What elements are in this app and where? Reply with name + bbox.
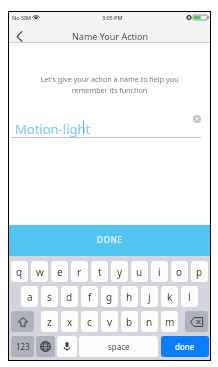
- button[interactable]: 123: [11, 336, 34, 357]
- button[interactable]: g: [101, 286, 118, 307]
- button[interactable]: Dictation: [57, 336, 77, 357]
- staticText: y: [117, 265, 123, 279]
- staticText: q: [16, 265, 23, 279]
- staticText: j: [148, 290, 151, 304]
- button[interactable]: p: [191, 261, 208, 282]
- staticText: Let's give your action a name to help yo…: [27, 74, 192, 95]
- staticText: Name Your Action: [72, 30, 149, 42]
- button[interactable]: y: [111, 261, 128, 282]
- staticText: k: [167, 290, 173, 304]
- staticText: g: [106, 290, 113, 304]
- staticText: x: [67, 315, 73, 329]
- staticText: b: [126, 315, 133, 329]
- button[interactable]: Next keyboard: [36, 336, 55, 357]
- staticText: e: [57, 265, 63, 279]
- button[interactable]: DONE: [9, 225, 210, 256]
- staticText: n: [146, 315, 153, 329]
- staticText: t: [98, 265, 102, 279]
- button[interactable]: h: [121, 286, 138, 307]
- other: Backspace: [185, 311, 208, 332]
- button[interactable]: o: [171, 261, 188, 282]
- staticText: p: [196, 265, 203, 279]
- button[interactable]: k: [161, 286, 178, 307]
- button[interactable]: d: [61, 286, 78, 307]
- staticText: h: [126, 290, 133, 304]
- staticText: i: [158, 265, 161, 279]
- other: Next keyboard: [36, 336, 55, 357]
- button[interactable]: v: [101, 311, 118, 332]
- button[interactable]: c: [81, 311, 98, 332]
- other: Shift: [11, 311, 34, 332]
- staticText: o: [176, 265, 183, 279]
- button[interactable]: q: [11, 261, 28, 282]
- staticText: d: [66, 290, 73, 304]
- staticText: 123: [16, 341, 30, 352]
- staticText: w: [36, 265, 44, 279]
- staticText: m: [165, 315, 175, 329]
- staticText: space: [108, 341, 130, 352]
- button[interactable]: e: [51, 261, 68, 282]
- staticText: l: [188, 290, 191, 304]
- button[interactable]: Clear text: [193, 115, 201, 123]
- staticText: done: [175, 341, 195, 352]
- staticText: v: [107, 315, 113, 329]
- button[interactable]: i: [151, 261, 168, 282]
- staticText: z: [47, 315, 52, 329]
- button[interactable]: w: [31, 261, 48, 282]
- button[interactable]: u: [131, 261, 148, 282]
- staticText: s: [47, 290, 52, 304]
- button[interactable]: n: [141, 311, 158, 332]
- button[interactable]: x: [61, 311, 78, 332]
- button[interactable]: t: [91, 261, 108, 282]
- staticText: r: [77, 265, 82, 279]
- button[interactable]: a: [21, 286, 38, 307]
- staticText: f: [88, 290, 92, 304]
- button[interactable]: done: [161, 336, 209, 357]
- button[interactable]: Back: [11, 28, 27, 45]
- staticText: a: [27, 290, 33, 304]
- button[interactable]: s: [41, 286, 58, 307]
- staticText: Motion-light: [15, 120, 91, 138]
- staticText: c: [87, 315, 92, 329]
- button[interactable]: b: [121, 311, 138, 332]
- staticText: DONE: [97, 234, 123, 245]
- button[interactable]: m: [161, 311, 178, 332]
- button[interactable]: Shift: [11, 311, 34, 332]
- other: Dictation: [57, 336, 77, 357]
- button[interactable]: Backspace: [185, 311, 208, 332]
- button[interactable]: j: [141, 286, 158, 307]
- button[interactable]: l: [181, 286, 198, 307]
- staticText: 3:05 PM: [102, 14, 123, 22]
- button[interactable]: space: [79, 336, 158, 357]
- button[interactable]: r: [71, 261, 88, 282]
- staticText: No SIM: [12, 14, 31, 22]
- button[interactable]: f: [81, 286, 98, 307]
- button[interactable]: z: [41, 311, 58, 332]
- staticText: u: [136, 265, 143, 279]
